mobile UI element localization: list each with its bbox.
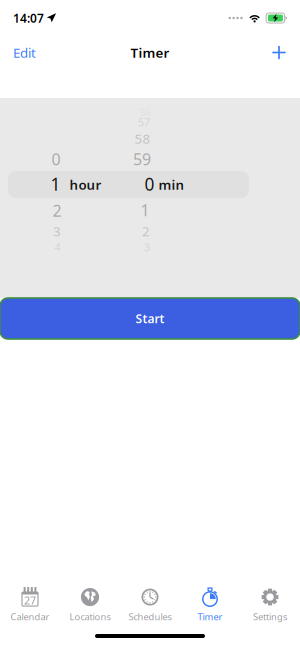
staticText: Start	[135, 310, 164, 326]
staticText: 1	[50, 172, 60, 195]
button[interactable]: Add timer	[258, 31, 300, 73]
staticText: Timer	[197, 611, 222, 623]
staticText: 4	[54, 240, 60, 254]
staticText: 27	[24, 593, 36, 608]
button[interactable]: Start	[0, 298, 300, 339]
button[interactable]: Timer	[180, 585, 240, 625]
staticText: Locations	[69, 611, 110, 623]
staticText: min	[158, 176, 184, 193]
staticText: Calendar	[10, 611, 49, 623]
button[interactable]: Schedules	[120, 585, 180, 625]
staticText: 2	[142, 222, 150, 240]
staticText: 57	[138, 115, 150, 129]
staticText: Edit	[13, 44, 36, 61]
button[interactable]: Settings	[240, 585, 300, 625]
staticText: Settings	[253, 611, 287, 623]
staticText: 56	[140, 106, 150, 119]
staticText: 2	[52, 200, 61, 221]
staticText: Schedules	[128, 611, 171, 623]
staticText: 1	[140, 199, 149, 221]
staticText: 3	[53, 222, 61, 240]
staticText: 0	[144, 172, 154, 195]
button[interactable]: Locations	[60, 585, 120, 625]
button[interactable]: 27	[0, 585, 60, 625]
staticText: Timer	[130, 44, 169, 61]
button[interactable]: Edit	[0, 31, 49, 73]
staticText: 3	[144, 240, 150, 254]
staticText: 59	[133, 148, 151, 170]
staticText: 0	[51, 148, 60, 170]
staticText: 14:07	[13, 10, 44, 26]
staticText: hour	[69, 176, 101, 193]
staticText: 58	[134, 130, 150, 147]
